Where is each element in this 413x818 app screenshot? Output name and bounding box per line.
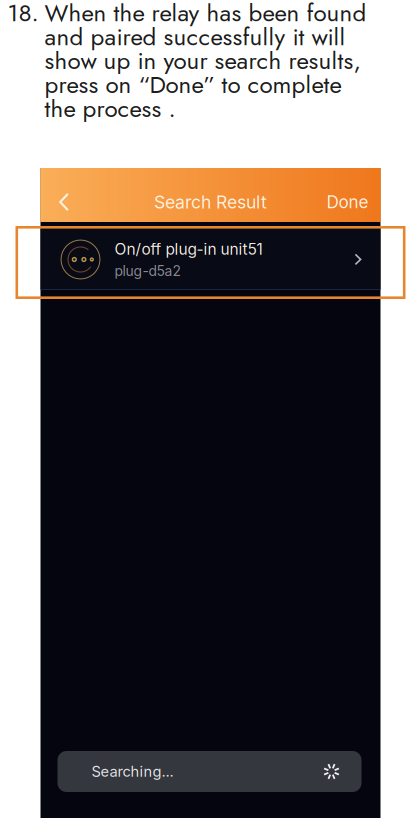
staticText: Searching... [91, 763, 173, 780]
staticText: When the relay has been found and paired… [44, 1, 366, 120]
button[interactable]: Back [40, 186, 104, 218]
staticText: Done [326, 192, 368, 212]
staticText: 18. [7, 1, 38, 25]
staticText: plug-d5a2 [114, 262, 180, 279]
staticText: Search Result [154, 191, 267, 213]
staticText: On/off plug-in unit51 [114, 240, 262, 258]
button[interactable]: On/off plug-in unit51 [40, 226, 380, 289]
button[interactable]: Done [294, 186, 380, 218]
